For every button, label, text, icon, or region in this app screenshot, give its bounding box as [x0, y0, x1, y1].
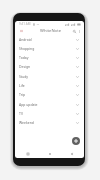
button[interactable]: Back: [68, 150, 75, 157]
button[interactable]: Study: [15, 72, 84, 81]
staticText: Trip: [19, 92, 26, 97]
staticText: Shopping: [19, 46, 35, 51]
button[interactable]: Shopping: [15, 44, 84, 53]
staticText: Today: [19, 55, 29, 60]
staticText: TV: [19, 111, 23, 116]
button[interactable]: TV: [15, 109, 84, 118]
staticText: Study: [19, 74, 28, 79]
staticText: Android: [19, 37, 32, 42]
button[interactable]: Home: [46, 150, 53, 157]
staticText: 9:41 AM: [19, 22, 31, 26]
button[interactable]: Today: [15, 53, 84, 62]
button[interactable]: Life: [15, 81, 84, 90]
button[interactable]: Recents: [24, 150, 31, 157]
button[interactable]: Trip: [15, 90, 84, 99]
button[interactable]: Search: [71, 28, 77, 34]
button[interactable]: More options: [77, 29, 82, 34]
staticText: Weekend: [19, 120, 34, 125]
button[interactable]: App update: [15, 100, 84, 109]
button[interactable]: Weekend: [15, 118, 84, 127]
button[interactable]: Menu: [18, 28, 24, 34]
staticText: Design: [19, 64, 31, 69]
button[interactable]: New note: [72, 137, 80, 145]
button[interactable]: Design: [15, 62, 84, 71]
staticText: Life: [19, 83, 25, 88]
staticText: WhiteNote: [40, 28, 62, 34]
button[interactable]: Android: [15, 35, 84, 44]
staticText: App update: [19, 102, 38, 107]
